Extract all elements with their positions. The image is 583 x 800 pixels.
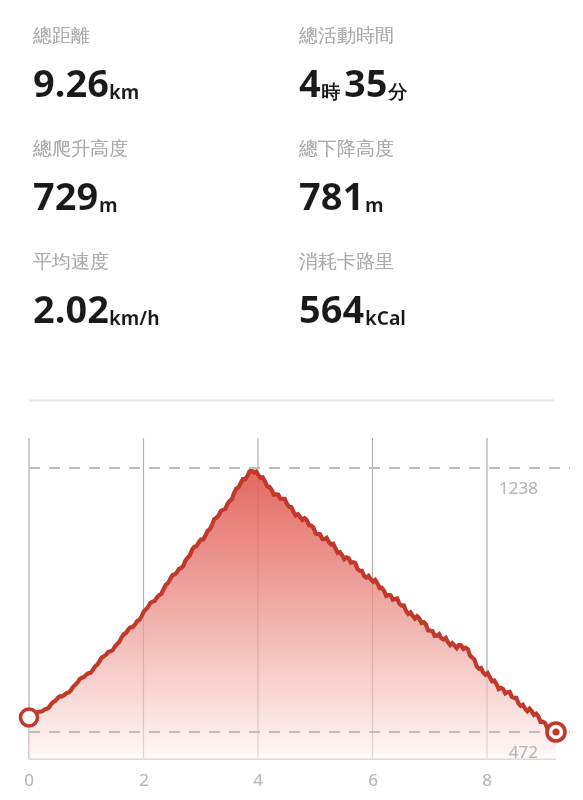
staticText: 4 [238,768,278,791]
staticText: 35 [344,56,388,108]
staticText: 分 [388,81,407,105]
staticText: kCal [365,305,407,331]
staticText: 總下降高度 [299,137,394,161]
staticText: 729 [33,169,99,221]
button[interactable]: 總活動時間 [299,24,407,108]
staticText: 時 [321,81,340,105]
staticText: m [365,192,384,218]
button[interactable]: Elevation profile chart [0,400,583,800]
staticText: 781 [299,169,365,221]
staticText: 8 [467,768,507,791]
staticText: 2.02 [33,282,109,334]
staticText: 9.26 [33,56,109,108]
staticText: 6 [353,768,393,791]
staticText: 4 [299,56,321,108]
staticText: 總距離 [33,24,90,48]
staticText: 564 [299,282,365,334]
staticText: 消耗卡路里 [299,250,394,274]
staticText: km [109,79,140,105]
staticText: 472 [466,740,538,763]
staticText: 0 [9,768,49,791]
staticText: 2 [124,768,164,791]
staticText: 1238 [466,476,538,499]
staticText: km/h [109,305,160,331]
staticText: 總活動時間 [299,24,394,48]
button[interactable]: 總爬升高度 [33,137,128,221]
staticText: 平均速度 [33,250,109,274]
staticText: 總爬升高度 [33,137,128,161]
button[interactable]: 總下降高度 [299,137,394,221]
staticText: m [99,192,118,218]
button[interactable]: 平均速度 [33,250,160,334]
button[interactable]: 消耗卡路里 [299,250,407,334]
button[interactable]: 總距離 [33,24,140,108]
